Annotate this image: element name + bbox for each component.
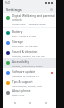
staticText: Pixel 7 Pro	[12, 93, 25, 96]
button[interactable]: Software update	[3, 68, 56, 78]
staticText: Updated to Android 14	[12, 74, 39, 77]
staticText: About phone	[12, 89, 31, 93]
staticText: Volume, haptics, Do Not Dis	[12, 54, 45, 57]
staticText: controls	[12, 18, 22, 22]
staticText: 62% - About 8 hr left	[12, 34, 36, 37]
button[interactable]: Tips & support	[3, 78, 56, 88]
staticText: Help articles, phone, chat	[12, 84, 42, 87]
button[interactable]: Account	[50, 8, 53, 11]
staticText: Software update	[12, 70, 36, 74]
button[interactable]: Accessibility	[3, 58, 56, 68]
staticText: Screen time	[12, 22, 26, 25]
button[interactable]: Navigation	[25, 98, 34, 107]
button[interactable]: Battery	[3, 28, 56, 38]
staticText: Digital Wellbeing and parental	[12, 14, 55, 18]
staticText: Sound & vibration	[12, 50, 38, 54]
staticText: Tips & support	[12, 80, 33, 84]
button[interactable]: Storage	[3, 38, 56, 48]
button[interactable]: Navigation	[10, 98, 19, 107]
button[interactable]: About phone	[3, 88, 56, 97]
staticText: Battery	[12, 30, 23, 34]
staticText: Accessibility	[12, 60, 29, 64]
staticText: Storage	[12, 40, 23, 44]
button[interactable]: Navigation	[41, 98, 50, 107]
button[interactable]: Digital Wellbeing and parental	[3, 13, 56, 27]
button[interactable]: Sound & vibration	[3, 48, 56, 58]
staticText: 24% used - 97 GB free	[12, 44, 38, 47]
staticText: Display, interaction, audio	[12, 64, 43, 67]
staticText: Settings	[6, 7, 22, 12]
staticText: 9:41	[5, 1, 11, 5]
staticText: Bedtime mode	[29, 22, 46, 25]
